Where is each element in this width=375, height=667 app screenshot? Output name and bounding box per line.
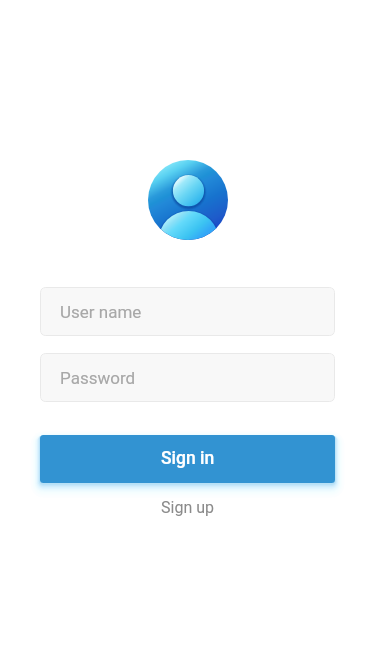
staticText: Password (60, 368, 136, 388)
staticText: User name (60, 302, 142, 322)
staticText: Sign in (161, 448, 215, 469)
other: User avatar (148, 160, 228, 240)
button[interactable]: Sign in (40, 435, 335, 483)
staticText: Sign up (161, 498, 214, 517)
button[interactable]: User name (40, 287, 335, 336)
button[interactable]: Password (40, 353, 335, 402)
button[interactable]: Sign up (151, 493, 224, 522)
